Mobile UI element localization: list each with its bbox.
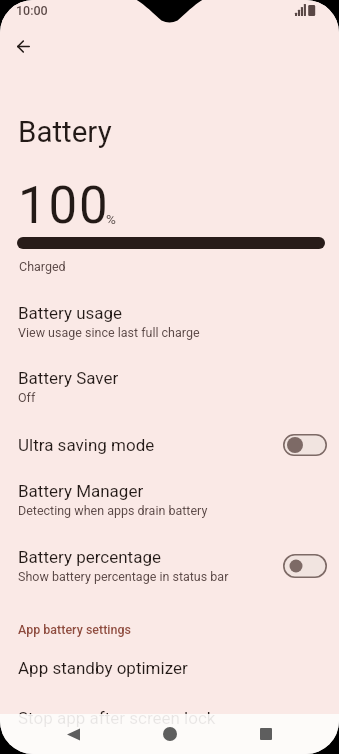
button[interactable]: Back [6, 29, 40, 63]
button[interactable]: Stop app after screen lock [0, 699, 339, 742]
staticText: Charged [19, 259, 66, 274]
button[interactable]: Battery usage [0, 294, 339, 349]
staticText: 100 [18, 176, 110, 236]
staticText: Stop app after screen lock [18, 708, 216, 728]
button[interactable]: Recent apps [243, 714, 289, 754]
staticText: Battery usage [18, 303, 123, 323]
staticText: Off [18, 390, 36, 405]
staticText: Battery Manager [18, 481, 144, 501]
staticText: App standby optimizer [18, 658, 188, 678]
button[interactable]: Toggle [283, 554, 327, 578]
button[interactable]: Ultra saving mode [0, 425, 339, 465]
button[interactable]: Battery percentage [0, 538, 339, 593]
button[interactable]: Toggle [283, 434, 327, 456]
staticText: Show battery percentage in status bar [18, 569, 229, 584]
staticText: Detecting when apps drain battery [18, 503, 208, 518]
button[interactable]: Battery Manager [0, 472, 339, 527]
button[interactable]: Home [147, 714, 193, 754]
button[interactable]: App standby optimizer [0, 649, 339, 692]
button[interactable]: Back [50, 714, 96, 754]
staticText: App battery settings [18, 622, 131, 637]
staticText: Battery [18, 115, 112, 150]
staticText: 10:00 [16, 3, 48, 18]
staticText: % [106, 211, 116, 227]
button[interactable]: Battery Saver [0, 359, 339, 414]
staticText: Battery percentage [18, 547, 161, 567]
staticText: View usage since last full charge [18, 325, 200, 340]
staticText: Ultra saving mode [18, 435, 155, 455]
staticText: Battery Saver [18, 368, 119, 388]
